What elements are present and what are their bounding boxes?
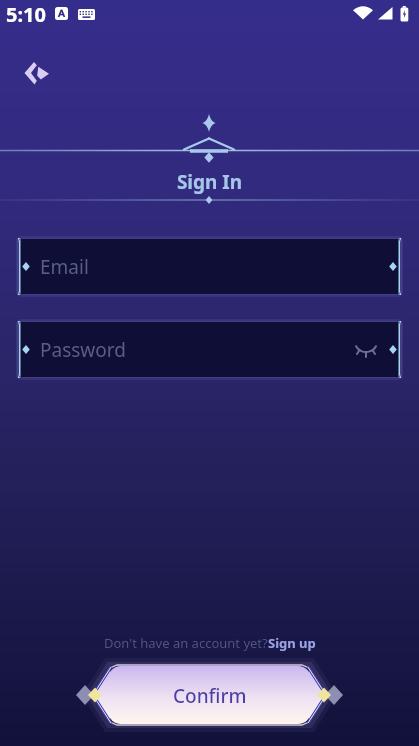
button[interactable]	[18, 54, 56, 90]
button[interactable]: Password	[18, 321, 401, 378]
staticText: Sign In	[0, 169, 419, 195]
staticText: Email	[40, 254, 89, 280]
staticText: Confirm	[173, 683, 247, 709]
staticText: Don't have an account yet?	[104, 634, 268, 652]
button[interactable]: Email	[18, 238, 401, 295]
button[interactable]: Sign up	[268, 634, 316, 652]
staticText: 5:10	[6, 1, 46, 28]
staticText: Password	[40, 337, 126, 363]
button[interactable]: Confirm	[74, 663, 345, 729]
